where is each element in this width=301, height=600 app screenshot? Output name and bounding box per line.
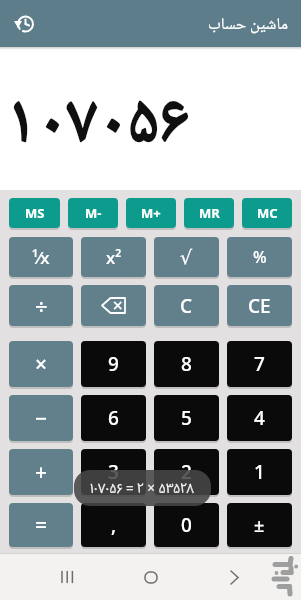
button[interactable]: , bbox=[81, 503, 146, 547]
button[interactable]: 4 bbox=[227, 395, 292, 441]
button[interactable]: MR bbox=[184, 198, 234, 228]
staticText: ¹⁄x bbox=[32, 246, 50, 269]
button[interactable]: × bbox=[9, 341, 73, 387]
staticText: 3 bbox=[108, 459, 119, 485]
button[interactable]: 3 bbox=[81, 449, 146, 495]
staticText: M+ bbox=[141, 204, 161, 222]
staticText: 8 bbox=[181, 351, 192, 377]
staticText: = bbox=[35, 511, 48, 540]
button[interactable] bbox=[131, 557, 171, 597]
staticText: 5 bbox=[181, 405, 192, 431]
button[interactable]: % bbox=[227, 237, 292, 277]
button[interactable]: 1 bbox=[227, 449, 292, 495]
button[interactable]: 2 bbox=[154, 449, 219, 495]
staticText: MC bbox=[257, 204, 278, 222]
staticText: CE bbox=[248, 293, 271, 319]
button[interactable]: x² bbox=[81, 237, 146, 277]
button[interactable]: CE bbox=[227, 285, 292, 326]
button[interactable]: = bbox=[9, 503, 73, 547]
button[interactable]: 7 bbox=[227, 341, 292, 387]
button[interactable]: 6 bbox=[81, 395, 146, 441]
button[interactable]: − bbox=[9, 395, 73, 441]
button[interactable]: ¹⁄x bbox=[9, 237, 73, 277]
staticText: ± bbox=[254, 513, 265, 538]
staticText: × bbox=[35, 350, 48, 379]
staticText: , bbox=[111, 512, 117, 538]
button[interactable] bbox=[47, 557, 87, 597]
button[interactable]: M- bbox=[68, 198, 118, 228]
staticText: C bbox=[180, 293, 193, 319]
staticText: ۱۰۷۰۵۶ bbox=[6, 68, 190, 184]
staticText: 9 bbox=[108, 351, 119, 377]
staticText: M- bbox=[85, 204, 102, 222]
button[interactable]: 5 bbox=[154, 395, 219, 441]
button[interactable]: 8 bbox=[154, 341, 219, 387]
button[interactable]: + bbox=[9, 449, 73, 495]
staticText: 7 bbox=[254, 351, 265, 377]
staticText: MR bbox=[199, 204, 220, 222]
staticText: + bbox=[35, 458, 48, 487]
staticText: % bbox=[253, 246, 267, 268]
staticText: 0 bbox=[181, 512, 192, 538]
staticText: ۱۰۷۰۵۶ bbox=[6, 68, 190, 184]
button[interactable]: MC bbox=[242, 198, 292, 228]
button[interactable]: 9 bbox=[81, 341, 146, 387]
staticText: − bbox=[35, 404, 48, 433]
staticText: x² bbox=[106, 246, 122, 269]
button[interactable]: MS bbox=[9, 198, 60, 228]
staticText: √ bbox=[180, 246, 193, 268]
staticText: ۱۰۷۰۵۶ = ۲ × ۵۳۵۲۸ bbox=[90, 479, 195, 497]
button[interactable]: M+ bbox=[126, 198, 176, 228]
button[interactable] bbox=[81, 285, 146, 326]
staticText: ÷ bbox=[35, 291, 48, 321]
staticText: 2 bbox=[181, 459, 192, 485]
button[interactable]: C bbox=[154, 285, 219, 326]
staticText: 1 bbox=[254, 459, 265, 485]
staticText: ماشین حساب bbox=[208, 13, 289, 35]
staticText: MS bbox=[25, 204, 45, 222]
button[interactable]: ÷ bbox=[9, 285, 73, 326]
staticText: 4 bbox=[254, 405, 265, 431]
button[interactable] bbox=[10, 10, 38, 38]
button[interactable] bbox=[214, 557, 254, 597]
staticText: 6 bbox=[108, 405, 119, 431]
button[interactable]: ± bbox=[227, 503, 292, 547]
button[interactable]: 0 bbox=[154, 503, 219, 547]
button[interactable]: √ bbox=[154, 237, 219, 277]
